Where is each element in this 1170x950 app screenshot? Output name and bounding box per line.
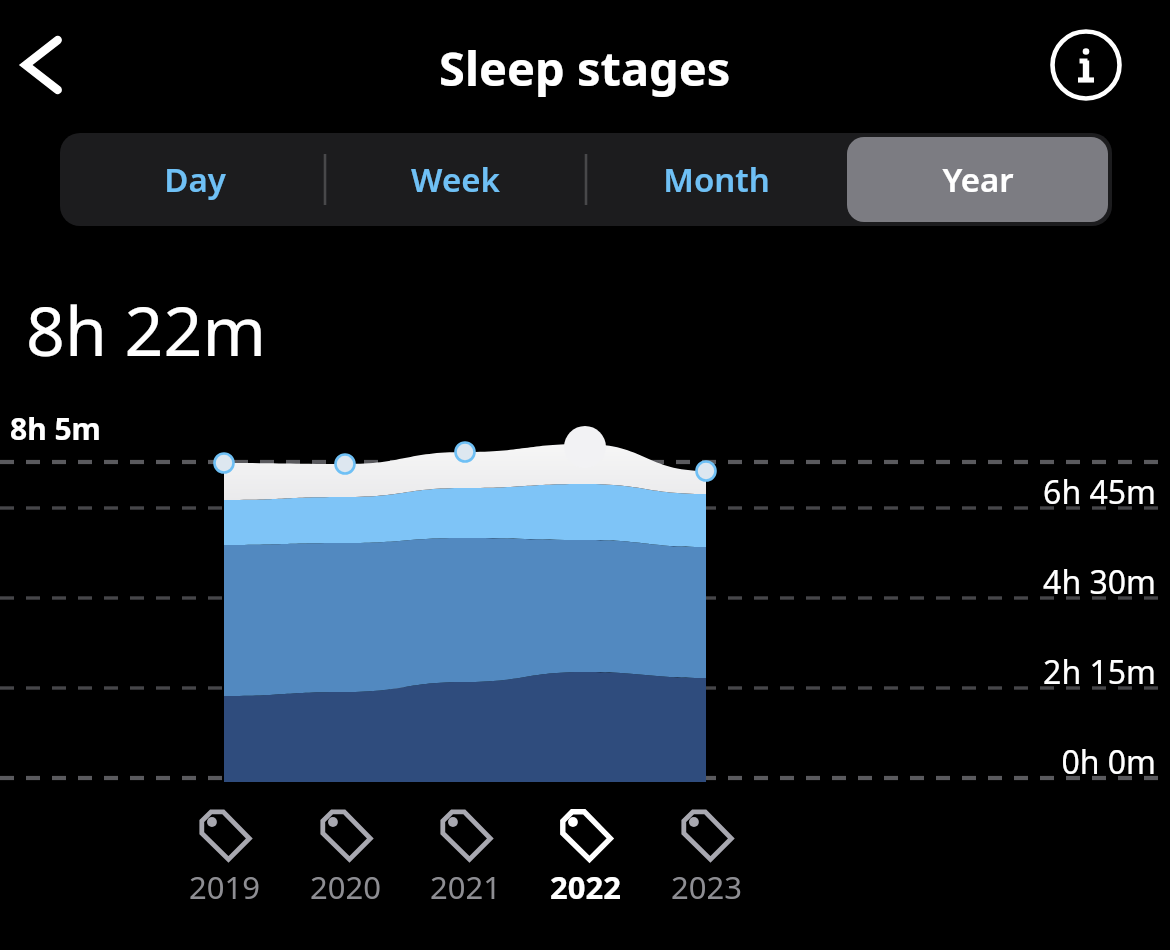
button[interactable]: Back [6,22,82,108]
staticText: 8h 5m [10,408,101,449]
staticText: 2022 [550,866,621,908]
staticText: 8h 22m [26,283,266,376]
button[interactable]: Info [1046,25,1126,105]
staticText: 2019 [189,866,260,908]
staticText: 2h 15m [1043,650,1156,694]
button[interactable]: 2022 [527,806,643,922]
staticText: 4h 30m [1043,560,1156,604]
button[interactable]: Week [325,137,586,222]
staticText: 2021 [430,866,501,908]
button[interactable]: 2019 [166,806,282,922]
staticText: Month [663,157,770,202]
staticText: 2020 [310,866,381,908]
staticText: 2023 [671,866,742,908]
button[interactable]: 2023 [648,806,764,922]
button[interactable]: Year [847,137,1108,222]
button[interactable]: 2021 [407,806,523,922]
staticText: 6h 45m [1043,470,1156,514]
button[interactable]: Month [586,137,847,222]
staticText: Week [411,157,500,202]
staticText: Sleep stages [439,36,731,100]
staticText: Year [942,157,1014,202]
button[interactable]: 2020 [287,806,403,922]
staticText: 0h 0m [1061,740,1156,784]
button[interactable]: Day [64,137,325,222]
staticText: Day [164,157,226,202]
